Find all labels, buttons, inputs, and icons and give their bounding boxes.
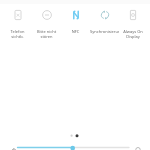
button[interactable]: Always On Display bbox=[119, 10, 147, 39]
button[interactable]: Telefon sichtbar bbox=[3, 10, 32, 39]
other: Bitte nicht stören bbox=[42, 10, 52, 20]
button[interactable]: Synchronisierung bbox=[90, 10, 119, 34]
staticText: NFC bbox=[61, 29, 90, 34]
staticText: Always On Display bbox=[119, 29, 147, 39]
other: Telefon sichtbar bbox=[13, 10, 23, 20]
button[interactable]: NFC bbox=[61, 10, 90, 34]
other: NFC bbox=[71, 10, 81, 20]
other: Always On Display bbox=[128, 10, 138, 20]
button[interactable]: Helligkeit bbox=[0, 142, 150, 150]
button[interactable]: Bitte nicht stören bbox=[32, 10, 61, 39]
staticText: Bitte nicht stören bbox=[32, 29, 61, 39]
staticText: Telefon sichtb. bbox=[3, 29, 32, 39]
staticText: Synchronisierung bbox=[90, 29, 119, 34]
other: Synchronisierung bbox=[100, 10, 110, 20]
